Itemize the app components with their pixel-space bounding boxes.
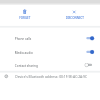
button[interactable]: Phone calls, on bbox=[0, 31, 100, 44]
button[interactable]: Disconnect bbox=[50, 4, 100, 26]
staticText: FORGET bbox=[19, 16, 30, 20]
staticText: Phone calls bbox=[15, 37, 32, 41]
staticText: Media audio bbox=[15, 51, 34, 55]
button[interactable]: Media audio, on bbox=[0, 45, 100, 58]
button[interactable]: Contact sharing, off bbox=[0, 58, 100, 71]
staticText: DISCONNECT bbox=[65, 16, 84, 20]
staticText: Contact sharing bbox=[15, 64, 39, 68]
staticText: Device's Bluetooth address: 00:1F:9E:AC:… bbox=[15, 74, 87, 79]
button[interactable]: Forget this device bbox=[0, 4, 50, 26]
